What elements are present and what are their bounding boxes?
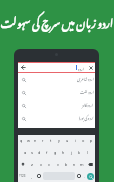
staticText: l <box>87 150 88 155</box>
button[interactable]: p <box>87 135 95 146</box>
staticText: g <box>54 150 57 155</box>
staticText: p <box>90 138 93 143</box>
button[interactable]: v <box>54 158 62 170</box>
staticText: i <box>75 138 76 143</box>
button[interactable]: , <box>27 170 36 182</box>
button[interactable]: Search <box>87 173 94 180</box>
other: Back <box>21 65 26 70</box>
button[interactable]: e <box>32 135 39 146</box>
staticText: y <box>58 138 60 143</box>
button[interactable]: Back <box>18 63 95 72</box>
staticText: اردو شاعری <box>77 73 94 83</box>
button[interactable]: اردو کالمز <box>18 99 95 112</box>
staticText: اردو <box>78 63 84 72</box>
staticText: t <box>50 138 52 143</box>
staticText: o <box>82 138 85 143</box>
staticText: ?123 <box>19 174 26 178</box>
staticText: m <box>80 162 84 167</box>
button[interactable]: d <box>36 146 43 158</box>
staticText: . <box>84 174 86 179</box>
staticText: k <box>78 150 81 155</box>
staticText: , <box>31 174 32 179</box>
staticText: j <box>71 150 72 155</box>
button[interactable]: t <box>47 135 55 146</box>
button[interactable]: k <box>75 146 83 158</box>
button[interactable]: Settings <box>76 170 82 182</box>
staticText: اردو لغت <box>80 86 94 96</box>
button[interactable]: f <box>43 146 51 158</box>
staticText: c <box>48 162 51 167</box>
staticText: x <box>40 162 42 167</box>
button[interactable]: x <box>36 158 45 170</box>
staticText: اردو کالمز <box>82 99 94 109</box>
button[interactable]: Emoji <box>36 170 42 182</box>
button[interactable]: اردو لغت <box>18 86 95 99</box>
button[interactable]: ?123 <box>18 170 27 182</box>
button[interactable]: s <box>29 146 36 158</box>
button[interactable]: z <box>27 158 36 170</box>
button[interactable]: b <box>62 158 70 170</box>
staticText: s <box>31 150 34 155</box>
other: Clear search <box>89 66 93 70</box>
button[interactable]: m <box>78 158 86 170</box>
button[interactable]: Shift <box>18 158 27 170</box>
staticText: r <box>42 138 44 143</box>
button[interactable]: g <box>51 146 59 158</box>
button[interactable]: l <box>83 146 91 158</box>
staticText: d <box>38 150 41 155</box>
button[interactable]: n <box>70 158 78 170</box>
button[interactable]: c <box>45 158 54 170</box>
button[interactable]: r <box>39 135 47 146</box>
button[interactable]: o <box>79 135 87 146</box>
staticText: u <box>66 138 69 143</box>
staticText: w <box>27 138 31 143</box>
button[interactable]: h <box>59 146 67 158</box>
button[interactable]: Backspace <box>86 158 95 170</box>
staticText: e <box>34 138 37 143</box>
staticText: v <box>57 162 59 167</box>
button[interactable]: q <box>18 135 25 146</box>
button[interactable]: j <box>67 146 75 158</box>
button[interactable]: اردو شاعری <box>18 73 95 86</box>
button[interactable]: i <box>71 135 79 146</box>
staticText: z <box>31 162 33 167</box>
button[interactable]: y <box>55 135 63 146</box>
button[interactable]: اردو کی بورڈ <box>18 112 95 125</box>
staticText: n <box>73 162 76 167</box>
button[interactable]: w <box>25 135 32 146</box>
staticText: f <box>46 150 48 155</box>
staticText: اردو کی بورڈ <box>79 112 94 122</box>
button[interactable]: u <box>63 135 71 146</box>
staticText: a <box>24 150 27 155</box>
staticText: q <box>20 138 23 143</box>
staticText: اردو زبان میں سرچ کی سہولت <box>0 7 114 35</box>
staticText: b <box>65 162 68 167</box>
button[interactable]: a <box>22 146 29 158</box>
staticText: h <box>62 150 65 155</box>
